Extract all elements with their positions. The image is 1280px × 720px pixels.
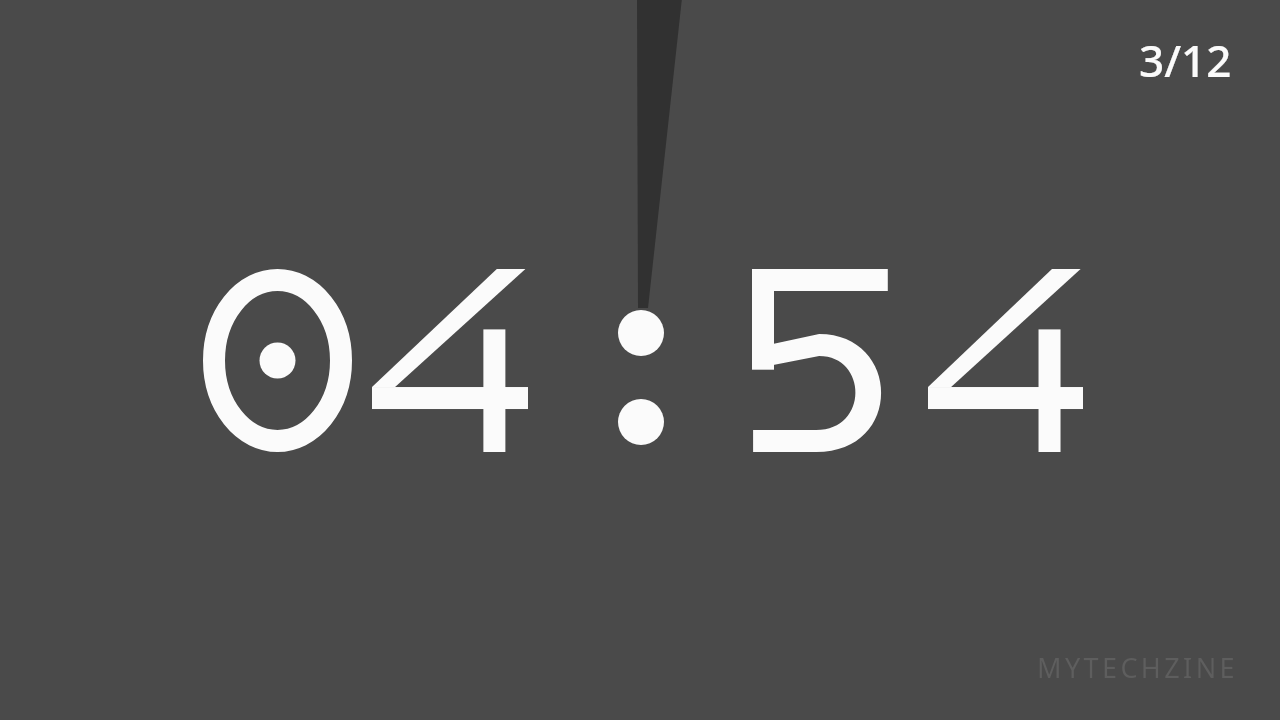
button[interactable]: Countdown timer 04:54, round 3 of 12	[0, 0, 1280, 720]
